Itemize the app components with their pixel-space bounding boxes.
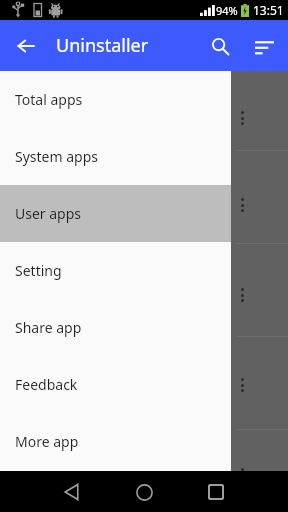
staticText: 94%	[216, 3, 238, 18]
staticText: User apps	[15, 204, 82, 223]
button[interactable]: More options	[235, 376, 249, 394]
button[interactable]: More options	[235, 466, 249, 484]
button[interactable]: Sort	[242, 24, 286, 68]
button[interactable]: More options	[235, 196, 249, 214]
button[interactable]: Feedback	[0, 356, 231, 413]
button[interactable]: More options	[235, 286, 249, 304]
button[interactable]: More app	[0, 413, 231, 470]
button[interactable]: User apps	[0, 185, 231, 242]
button[interactable]: Setting	[0, 242, 231, 299]
button[interactable]: Back	[52, 472, 92, 512]
staticText: System apps	[15, 147, 98, 166]
staticText: Uninstaller	[56, 33, 149, 58]
button[interactable]: System apps	[0, 128, 231, 185]
staticText: More app	[15, 432, 79, 451]
button[interactable]: Share app	[0, 299, 231, 356]
button[interactable]: More options	[235, 109, 249, 127]
staticText: Share app	[15, 318, 82, 337]
button[interactable]: Recent apps	[196, 472, 236, 512]
staticText: Setting	[15, 261, 62, 280]
staticText: Feedback	[15, 375, 78, 394]
button[interactable]: Back	[6, 26, 46, 66]
button[interactable]: Search	[198, 24, 242, 68]
button[interactable]: Home	[124, 472, 164, 512]
staticText: Total apps	[15, 90, 83, 109]
button[interactable]: Total apps	[0, 71, 231, 128]
staticText: 13:51	[253, 2, 284, 18]
